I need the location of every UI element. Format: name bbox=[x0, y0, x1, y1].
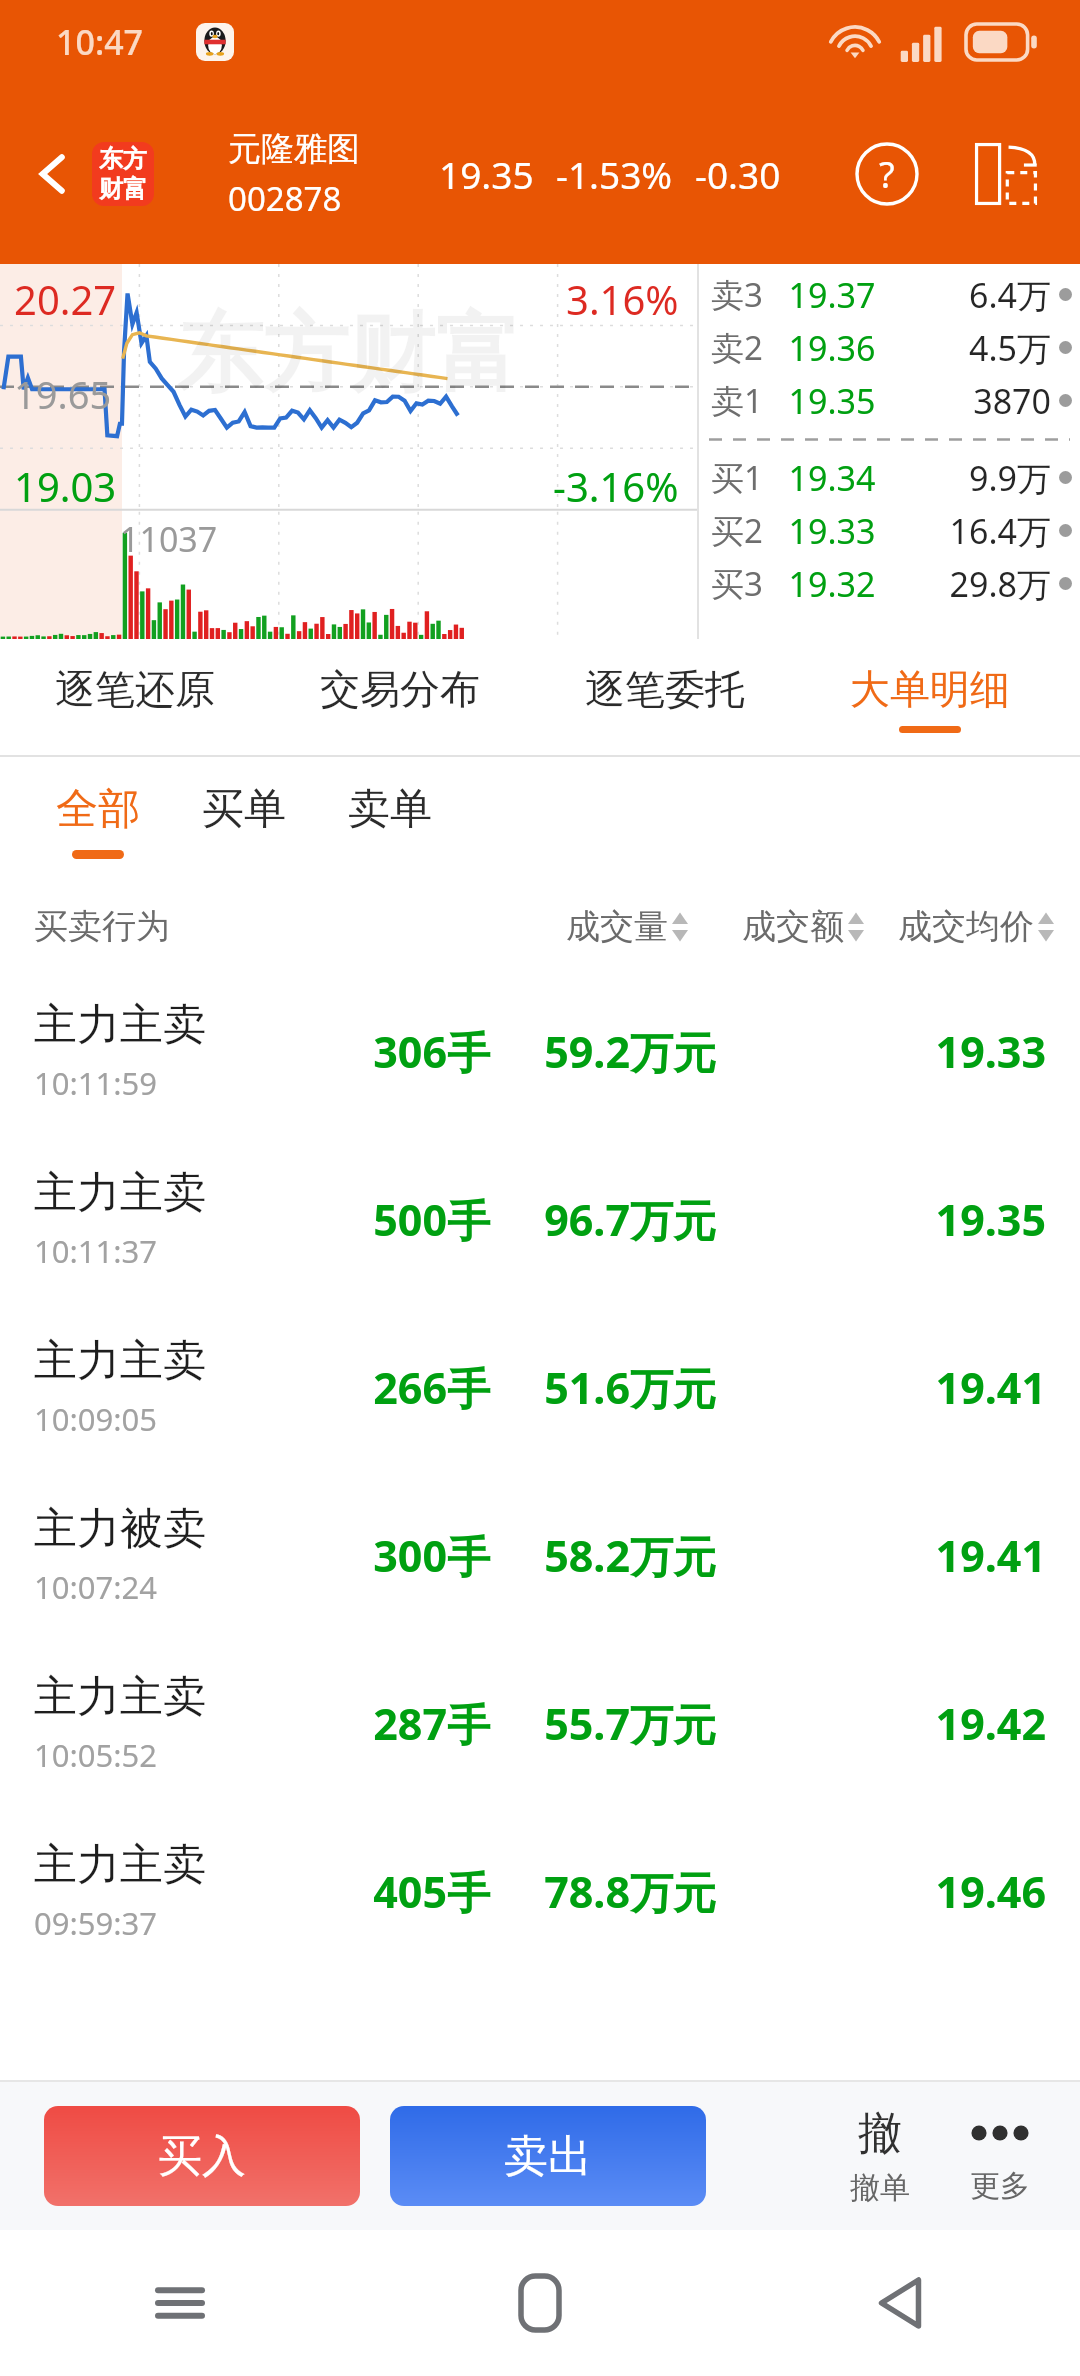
button[interactable]: 主力主卖 bbox=[0, 1807, 1080, 1975]
button[interactable]: 更多 bbox=[960, 2107, 1040, 2205]
staticText: 19.46 bbox=[716, 1862, 1046, 1921]
button[interactable]: 买3 bbox=[699, 557, 1080, 610]
button[interactable]: 主力主卖 bbox=[0, 1639, 1080, 1807]
button[interactable]: 卖出 bbox=[390, 2106, 706, 2206]
staticText: 19.41 bbox=[716, 1358, 1046, 1417]
button[interactable]: 返回 bbox=[720, 2230, 1080, 2376]
button[interactable]: 卖1 bbox=[699, 374, 1080, 427]
staticText: 9.9万 bbox=[881, 455, 1051, 501]
staticText: 10:47 bbox=[56, 19, 144, 65]
button[interactable]: 成交量 bbox=[566, 905, 688, 948]
staticText: 16.4万 bbox=[881, 508, 1051, 554]
staticText: 交易分布 bbox=[320, 664, 480, 714]
staticText: 19.65 bbox=[14, 368, 112, 420]
staticText: 成交量 bbox=[566, 905, 668, 948]
staticText: 主力主卖 bbox=[34, 1334, 206, 1388]
staticText: 3.16% bbox=[566, 272, 679, 326]
staticText: 卖3 bbox=[711, 272, 783, 317]
button[interactable]: 大单明细 bbox=[797, 639, 1062, 757]
staticText: 卖2 bbox=[711, 325, 783, 370]
staticText: 10:07:24 bbox=[34, 1566, 158, 1608]
staticText: 58.2万元 bbox=[506, 1526, 716, 1585]
staticText: 96.7万元 bbox=[506, 1190, 716, 1249]
button[interactable]: 最近任务 bbox=[0, 2230, 360, 2376]
staticText: 19.34 bbox=[783, 455, 881, 501]
staticText: 元隆雅图 bbox=[228, 128, 360, 170]
staticText: 10:11:59 bbox=[34, 1062, 158, 1104]
staticText: 买单 bbox=[202, 783, 286, 836]
button[interactable]: 成交额 bbox=[742, 905, 864, 948]
staticText: 78.8万元 bbox=[506, 1862, 716, 1921]
button[interactable]: 帮助 bbox=[844, 131, 930, 217]
staticText: 20.27 bbox=[14, 272, 117, 326]
button[interactable]: 买2 bbox=[699, 504, 1080, 557]
staticText: 10:11:37 bbox=[34, 1230, 158, 1272]
staticText: 主力主卖 bbox=[34, 1838, 206, 1892]
staticText: 19.35 bbox=[439, 149, 534, 199]
staticText: 买3 bbox=[711, 561, 783, 606]
button[interactable]: 主力主卖 bbox=[0, 1135, 1080, 1303]
staticText: 主力主卖 bbox=[34, 1670, 206, 1724]
staticText: 19.33 bbox=[783, 508, 881, 554]
staticText: 19.03 bbox=[14, 459, 117, 513]
staticText: 19.35 bbox=[783, 378, 881, 424]
button[interactable]: 主力主卖 bbox=[0, 1303, 1080, 1471]
staticText: 59.2万元 bbox=[506, 1022, 716, 1081]
button[interactable]: 逐笔还原 bbox=[2, 639, 267, 757]
button[interactable]: 主力主卖 bbox=[0, 967, 1080, 1135]
staticText: 东方财富 bbox=[177, 300, 521, 408]
staticText: 19.32 bbox=[783, 561, 881, 607]
button[interactable]: 分屏 bbox=[960, 128, 1052, 220]
button[interactable]: 成交均价 bbox=[898, 905, 1054, 948]
staticText: 19.42 bbox=[716, 1694, 1046, 1753]
staticText: 19.35 bbox=[716, 1190, 1046, 1249]
staticText: 更多 bbox=[970, 2167, 1030, 2205]
staticText: 11037 bbox=[120, 516, 218, 562]
staticText: 10:05:52 bbox=[34, 1734, 158, 1776]
staticText: 4.5万 bbox=[881, 325, 1051, 371]
staticText: -0.30 bbox=[695, 149, 781, 199]
staticText: 买卖行为 bbox=[34, 905, 170, 948]
staticText: 29.8万 bbox=[881, 561, 1051, 607]
staticText: 卖出 bbox=[504, 2129, 592, 2184]
button[interactable]: 主页 bbox=[360, 2230, 720, 2376]
button[interactable]: 逐笔委托 bbox=[532, 639, 797, 757]
staticText: 405手 bbox=[330, 1862, 490, 1921]
staticText: 500手 bbox=[330, 1190, 490, 1249]
staticText: 19.37 bbox=[783, 272, 881, 318]
button[interactable]: 买单 bbox=[180, 779, 308, 863]
staticText: 主力被卖 bbox=[34, 1502, 206, 1556]
staticText: 主力主卖 bbox=[34, 998, 206, 1052]
staticText: 287手 bbox=[330, 1694, 490, 1753]
button[interactable]: 交易分布 bbox=[267, 639, 532, 757]
button[interactable]: 返回 bbox=[10, 131, 96, 217]
staticText: 266手 bbox=[330, 1358, 490, 1417]
button[interactable]: 卖2 bbox=[699, 321, 1080, 374]
staticText: 逐笔还原 bbox=[55, 664, 215, 714]
staticText: 卖单 bbox=[348, 783, 432, 836]
staticText: 买2 bbox=[711, 508, 783, 553]
button[interactable]: 东方 bbox=[92, 142, 154, 206]
staticText: 300手 bbox=[330, 1526, 490, 1585]
staticText: 3870 bbox=[881, 378, 1051, 424]
staticText: 主力主卖 bbox=[34, 1166, 206, 1220]
staticText: 买入 bbox=[158, 2129, 246, 2184]
staticText: -3.16% bbox=[553, 459, 679, 513]
button[interactable]: 买1 bbox=[699, 451, 1080, 504]
staticText: 09:59:37 bbox=[34, 1902, 158, 1944]
staticText: 19.36 bbox=[783, 325, 881, 371]
staticText: 撤单 bbox=[850, 2169, 910, 2207]
button[interactable]: 买入 bbox=[44, 2106, 360, 2206]
staticText: ? bbox=[879, 150, 895, 199]
button[interactable]: 全部 bbox=[34, 779, 162, 863]
button[interactable]: 卖3 bbox=[699, 268, 1080, 321]
button[interactable]: 卖单 bbox=[326, 779, 454, 863]
button[interactable]: 主力被卖 bbox=[0, 1471, 1080, 1639]
staticText: 成交额 bbox=[742, 905, 844, 948]
button[interactable]: 撤 bbox=[840, 2106, 920, 2207]
staticText: 财富 bbox=[99, 174, 147, 204]
staticText: 55.7万元 bbox=[506, 1694, 716, 1753]
staticText: 逐笔委托 bbox=[585, 664, 745, 714]
staticText: 大单明细 bbox=[850, 664, 1010, 714]
staticText: 东方 bbox=[99, 144, 147, 174]
